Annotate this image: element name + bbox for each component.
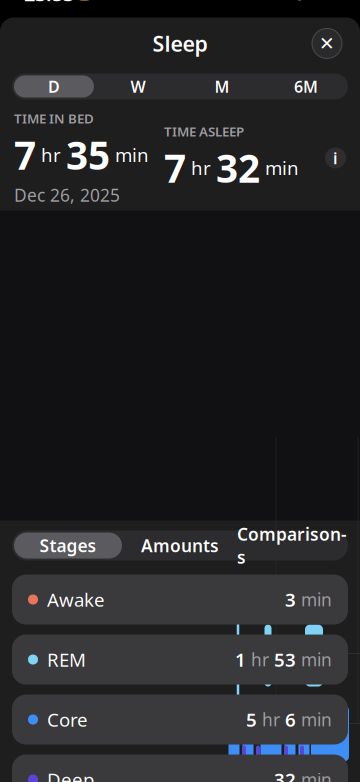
staticText: M: [214, 76, 229, 97]
staticText: Deep: [47, 767, 94, 782]
staticText: min: [110, 142, 149, 167]
staticText: 🔔: [76, 0, 93, 1]
staticText: min: [296, 708, 332, 731]
staticText: 1: [235, 647, 246, 672]
staticText: 35: [66, 129, 110, 180]
staticText: min: [296, 768, 332, 782]
staticText: Sleep: [152, 29, 207, 58]
staticText: ●: [293, 0, 306, 2]
staticText: Comparisons: [237, 522, 347, 568]
staticText: 53: [274, 647, 296, 672]
button[interactable]: Deep: [12, 754, 348, 782]
staticText: 6M: [294, 76, 318, 97]
staticText: min: [296, 648, 332, 671]
staticText: 7: [164, 142, 186, 193]
staticText: D: [48, 76, 60, 97]
button[interactable]: M: [180, 73, 264, 99]
button[interactable]: Awake: [12, 574, 348, 624]
staticText: min: [296, 588, 332, 611]
button[interactable]: 6M: [264, 73, 348, 99]
staticText: 32: [274, 767, 296, 782]
staticText: hr: [246, 648, 274, 671]
button[interactable]: Stages: [12, 530, 124, 560]
button[interactable]: Core: [12, 694, 348, 744]
staticText: ✕: [319, 33, 335, 54]
staticText: 6: [285, 707, 296, 732]
staticText: 23:53: [24, 0, 74, 7]
staticText: Awake: [47, 587, 105, 612]
button[interactable]: Comparisons: [236, 530, 348, 560]
staticText: 3: [285, 587, 296, 612]
staticText: i: [333, 147, 338, 169]
staticText: Dec 26, 2025: [14, 183, 120, 206]
staticText: hr: [186, 155, 216, 180]
staticText: W: [130, 76, 145, 97]
staticText: TIME ASLEEP: [164, 122, 244, 140]
staticText: 5: [246, 707, 257, 732]
button[interactable]: Close: [312, 28, 342, 58]
staticText: TIME IN BED: [14, 109, 94, 127]
staticText: hr: [257, 708, 285, 731]
staticText: REM: [47, 647, 86, 672]
staticText: 32: [216, 142, 260, 193]
button[interactable]: REM: [12, 634, 348, 684]
staticText: min: [260, 155, 299, 180]
button[interactable]: About sleep data: [325, 147, 346, 169]
button[interactable]: W: [96, 73, 180, 99]
button[interactable]: D: [12, 73, 96, 99]
staticText: 7: [14, 129, 36, 180]
button[interactable]: Amounts: [124, 530, 236, 560]
staticText: Core: [47, 707, 88, 732]
staticText: hr: [36, 142, 66, 167]
staticText: Amounts: [141, 534, 219, 557]
staticText: Stages: [39, 534, 96, 557]
